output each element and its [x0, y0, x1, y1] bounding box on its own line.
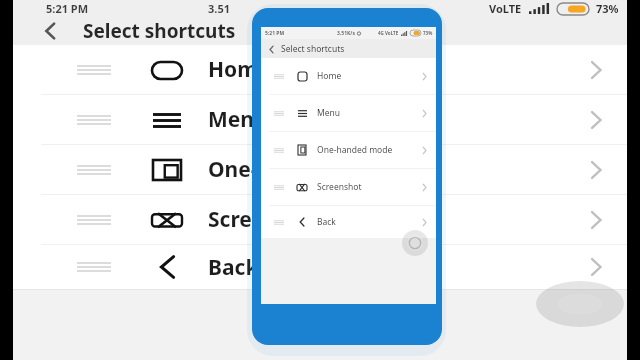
button[interactable]: Home	[261, 58, 436, 94]
staticText: Menu	[317, 107, 341, 119]
button[interactable]: Back	[264, 42, 278, 56]
staticText: Screenshot	[208, 205, 325, 234]
staticText: Menu	[208, 105, 268, 134]
staticText: Home	[208, 55, 271, 84]
staticText: One-handed mode	[317, 144, 393, 156]
button[interactable]: Screenshot	[261, 169, 436, 205]
button[interactable]: Menu	[13, 95, 627, 144]
staticText: VoLTE	[489, 1, 522, 16]
button[interactable]: Back	[13, 245, 627, 289]
button[interactable]: Back	[35, 16, 65, 45]
staticText: 5:21 PM	[46, 1, 89, 16]
staticText: Back	[208, 253, 259, 282]
staticText: Back	[317, 216, 336, 228]
button[interactable]: Screenshot	[13, 195, 627, 244]
staticText: 3.51K/s	[337, 30, 355, 37]
button[interactable]: One-handed mode	[13, 145, 627, 194]
staticText: One-handed mode	[208, 155, 402, 184]
staticText: Select shortcuts	[83, 18, 236, 44]
staticText: 5:21 PM	[265, 30, 285, 37]
button[interactable]: One-handed mode	[261, 132, 436, 168]
staticText: Home	[317, 70, 342, 82]
staticText: 73%	[596, 1, 619, 16]
staticText: Select shortcuts	[281, 43, 345, 55]
button[interactable]: Menu	[261, 95, 436, 131]
button[interactable]: Home	[13, 45, 627, 94]
staticText: 4G VoLTE	[378, 30, 399, 36]
button[interactable]: Back	[261, 206, 436, 238]
staticText: 73%	[423, 30, 433, 36]
staticText: Screenshot	[317, 181, 362, 193]
staticText: 3.51	[208, 1, 230, 16]
